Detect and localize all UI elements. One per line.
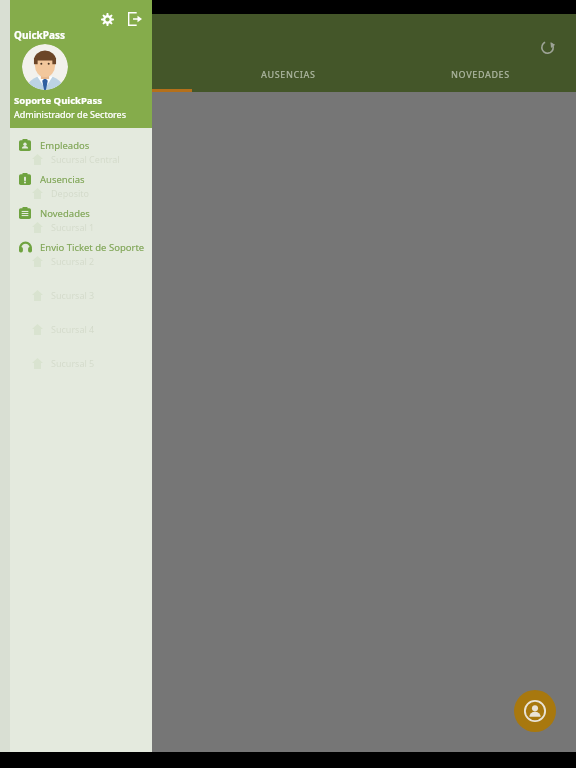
staticText: Sucursal 1 <box>51 221 95 233</box>
button[interactable]: Empleados <box>10 128 152 162</box>
staticText: QuickPass <box>14 28 65 42</box>
button[interactable]: EMPLEADOS <box>0 56 192 92</box>
button[interactable]: Ausencias <box>10 162 152 196</box>
staticText: Envio Ticket de Soporte <box>40 241 145 254</box>
button[interactable]: Novedades <box>10 196 152 230</box>
staticText: QP Admin <box>56 30 138 53</box>
staticText: Sucursal 3 <box>51 289 95 301</box>
button[interactable]: Envio Ticket de Soporte <box>10 230 152 264</box>
staticText: EMPLEADOS <box>67 68 126 80</box>
button[interactable]: Log out <box>122 6 148 32</box>
button[interactable] <box>22 44 68 90</box>
staticText: Empleados <box>40 139 90 152</box>
staticText: NOVEDADES <box>451 68 510 80</box>
staticText: AUSENCIAS <box>261 68 316 80</box>
staticText: Soporte QuickPass <box>14 94 103 107</box>
staticText: Sucursal 2 <box>51 255 95 267</box>
staticText: Ausencias <box>40 173 85 186</box>
staticText: Sucursal Central <box>51 153 120 165</box>
button[interactable]: Refresh <box>532 32 562 62</box>
button[interactable]: AUSENCIAS <box>192 56 384 92</box>
staticText: Novedades <box>40 207 90 220</box>
button[interactable]: Settings <box>94 6 120 32</box>
staticText: Sucursal 4 <box>51 323 95 335</box>
staticText: Sucursal 5 <box>51 357 95 369</box>
button[interactable]: Add employee <box>514 690 556 732</box>
button[interactable]: NOVEDADES <box>384 56 576 92</box>
staticText: Deposito <box>51 187 89 199</box>
staticText: Administrador de Sectores <box>14 108 126 120</box>
